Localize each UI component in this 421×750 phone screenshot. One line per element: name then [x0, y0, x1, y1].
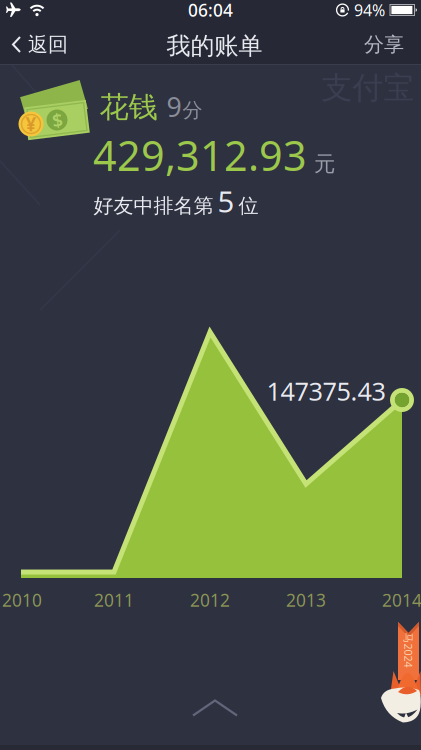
staticText: 9 — [166, 89, 181, 124]
staticText: 2013 — [286, 588, 326, 611]
staticText: ¥ — [25, 112, 36, 136]
staticText: 2014 — [382, 588, 421, 611]
staticText: 2011 — [94, 588, 134, 611]
staticText: 马2024 — [391, 643, 421, 657]
staticText: 5 — [217, 181, 234, 220]
staticText: 好友中排名第 — [93, 193, 213, 218]
staticText: 429,312.93 — [93, 128, 307, 182]
staticText: 返回 — [28, 32, 68, 57]
button[interactable]: 返回 — [0, 30, 68, 54]
staticText: 94% — [354, 0, 385, 21]
staticText: 2010 — [2, 588, 42, 611]
staticText: 147375.43 — [266, 374, 385, 408]
staticText: 06:04 — [188, 0, 233, 21]
staticText: 花钱 — [99, 89, 157, 125]
staticText: 我的账单 — [166, 31, 262, 61]
staticText: $ — [52, 108, 63, 132]
staticText: 分享 — [364, 32, 404, 57]
staticText: 支付宝 — [321, 69, 414, 107]
staticText: 分 — [182, 98, 202, 123]
staticText: 2012 — [190, 588, 230, 611]
staticText: 元 — [314, 151, 335, 177]
staticText: 位 — [238, 193, 258, 218]
button[interactable]: 分享 — [364, 30, 421, 54]
button[interactable]: 上滑查看 — [192, 699, 238, 716]
